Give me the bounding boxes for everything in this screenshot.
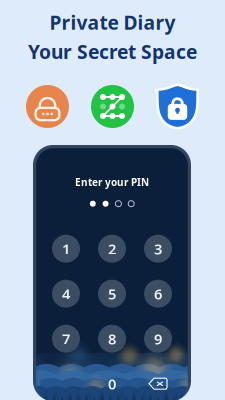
button[interactable]: 0: [89, 361, 135, 400]
button[interactable]: 7: [43, 316, 89, 361]
button[interactable]: 4: [43, 271, 89, 316]
button[interactable]: 2: [89, 226, 135, 271]
staticText: Private Diary: [49, 9, 175, 35]
staticText: 1: [62, 239, 70, 259]
button[interactable]: Delete: [135, 361, 181, 400]
button[interactable]: Pattern lock: [91, 85, 134, 128]
button[interactable]: 5: [89, 271, 135, 316]
button[interactable]: 6: [135, 271, 181, 316]
staticText: 7: [62, 329, 70, 349]
staticText: 5: [108, 284, 116, 304]
staticText: 6: [154, 284, 162, 304]
button[interactable]: 8: [89, 316, 135, 361]
button[interactable]: 3: [135, 226, 181, 271]
staticText: 8: [108, 329, 116, 349]
staticText: 9: [154, 329, 162, 349]
staticText: 0: [108, 374, 116, 394]
button[interactable]: 1: [43, 226, 89, 271]
button[interactable]: Secure vault: [156, 85, 199, 128]
button[interactable]: 9: [135, 316, 181, 361]
staticText: Your Secret Space: [28, 38, 197, 65]
staticText: 4: [62, 284, 70, 304]
staticText: 3: [154, 239, 162, 259]
staticText: Enter your PIN: [75, 175, 149, 189]
button[interactable]: PIN lock: [26, 85, 69, 128]
staticText: 2: [108, 239, 116, 259]
